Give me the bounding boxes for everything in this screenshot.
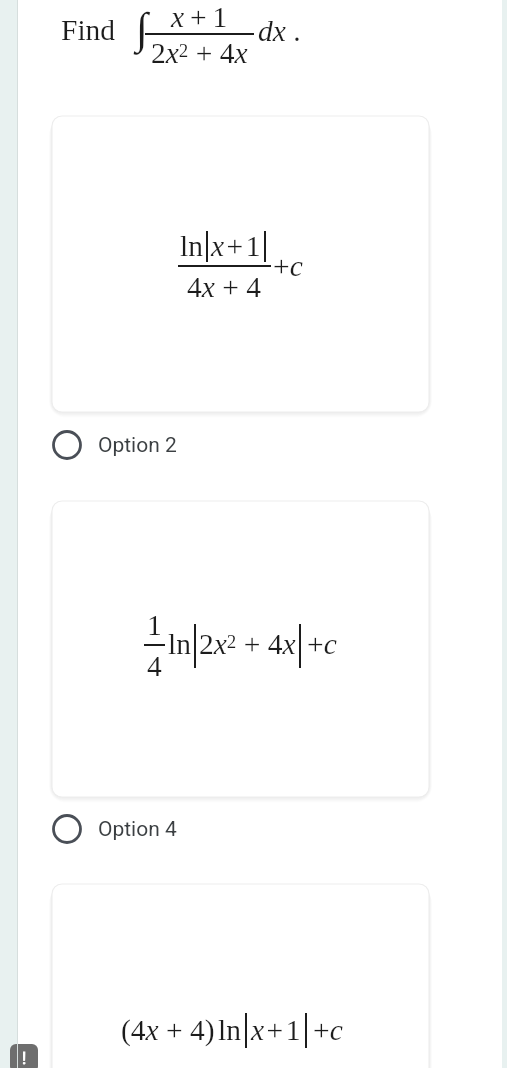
staticText: ln bbox=[180, 230, 203, 263]
button[interactable]: Option 2 bbox=[0, 415, 507, 475]
staticText: 4 bbox=[147, 650, 162, 683]
staticText: 2x2 + 4x bbox=[151, 37, 248, 70]
staticText: ln bbox=[218, 1014, 241, 1047]
button[interactable]: Option 4 bbox=[0, 799, 507, 859]
button[interactable]: 1 bbox=[52, 501, 429, 797]
staticText: ∫ bbox=[136, 4, 149, 53]
staticText: 2x2 + 4x bbox=[199, 628, 296, 661]
staticText: x + 1 bbox=[171, 1, 228, 34]
staticText: Option 2 bbox=[98, 433, 177, 458]
button[interactable]: Report a problem bbox=[10, 1044, 38, 1068]
staticText: x + 1 bbox=[251, 1014, 301, 1047]
staticText: (4x + 4) bbox=[121, 1014, 215, 1047]
staticText: ln bbox=[168, 628, 191, 661]
staticText: Find bbox=[61, 14, 116, 47]
button[interactable]: ln bbox=[52, 116, 429, 412]
staticText: ! bbox=[22, 1049, 27, 1068]
staticText: dx . bbox=[258, 15, 301, 48]
staticText: 1 bbox=[147, 609, 162, 642]
staticText: +c bbox=[307, 628, 337, 661]
staticText: +c bbox=[273, 250, 303, 283]
button[interactable]: (4x + 4) bbox=[52, 884, 429, 1068]
staticText: x + 1 bbox=[211, 230, 261, 263]
staticText: 4x + 4 bbox=[187, 271, 261, 304]
staticText: +c bbox=[313, 1014, 343, 1047]
staticText: Option 4 bbox=[98, 817, 177, 842]
